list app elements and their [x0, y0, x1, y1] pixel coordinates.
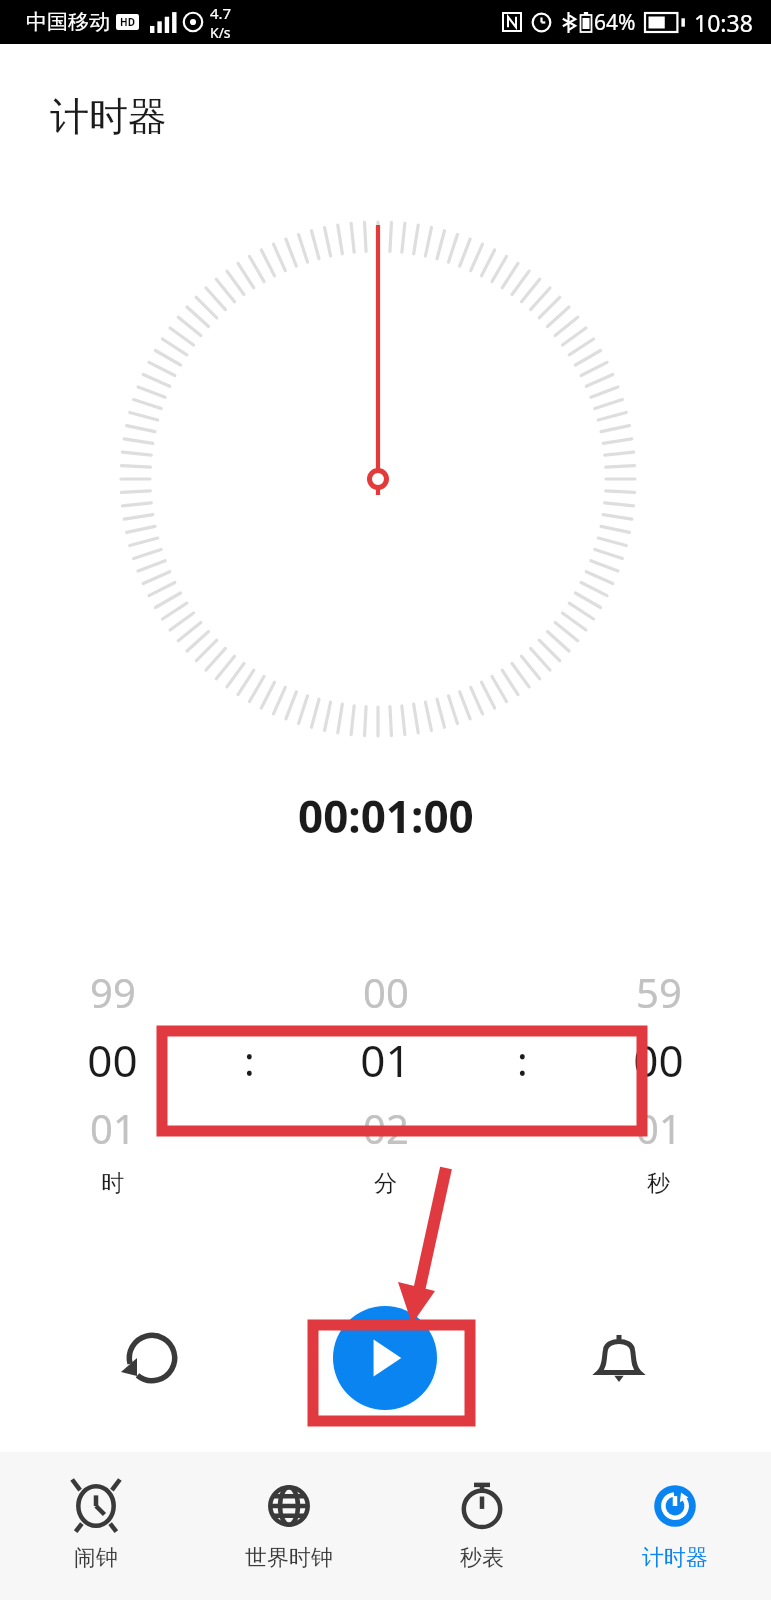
staticText: 计时器 — [642, 1544, 708, 1572]
button[interactable]: 秒 — [546, 1158, 771, 1208]
staticText: 中国移动 — [26, 9, 110, 35]
staticText: 时 — [101, 1169, 124, 1198]
staticText: K/s — [210, 23, 231, 42]
button[interactable]: Start — [333, 1306, 437, 1410]
button[interactable]: 01 — [273, 1022, 498, 1098]
button[interactable]: 世界时钟 — [192, 1452, 385, 1600]
button[interactable]: 分 — [273, 1158, 498, 1208]
button[interactable]: 秒表 — [385, 1452, 578, 1600]
staticText: 01 — [90, 1101, 136, 1155]
button[interactable]: 计时器 — [578, 1452, 771, 1600]
button[interactable]: 00 — [273, 962, 498, 1022]
button[interactable]: 时 — [0, 1158, 225, 1208]
staticText: 闹钟 — [74, 1544, 118, 1572]
button[interactable]: 闹钟 — [0, 1452, 192, 1600]
staticText: 分 — [374, 1169, 397, 1198]
staticText: : — [244, 1033, 255, 1087]
staticText: 01 — [636, 1101, 682, 1155]
staticText: 00 — [633, 1030, 684, 1090]
button[interactable]: Ringtone — [571, 1310, 667, 1406]
button[interactable]: 01 — [0, 1098, 225, 1158]
staticText: 计时器 — [50, 92, 167, 141]
staticText: 10:38 — [694, 7, 753, 38]
staticText: HD — [120, 15, 135, 29]
button[interactable]: 02 — [273, 1098, 498, 1158]
button[interactable]: 01 — [546, 1098, 771, 1158]
staticText: 99 — [90, 965, 136, 1019]
staticText: : — [517, 1033, 528, 1087]
staticText: 02 — [363, 1101, 409, 1155]
staticText: 世界时钟 — [245, 1544, 333, 1572]
staticText: 64% — [594, 8, 636, 37]
staticText: 秒 — [647, 1169, 670, 1198]
staticText: 00 — [363, 965, 409, 1019]
button[interactable]: 59 — [546, 962, 771, 1022]
button[interactable]: 00 — [0, 1022, 225, 1098]
button[interactable]: 00 — [546, 1022, 771, 1098]
button[interactable]: 计时器 — [46, 88, 171, 145]
staticText: 01 — [360, 1030, 411, 1090]
button[interactable]: 99 — [0, 962, 225, 1022]
staticText: 59 — [636, 965, 682, 1019]
staticText: 00:01:00 — [298, 786, 474, 846]
staticText: 秒表 — [460, 1544, 504, 1572]
staticText: 4.7 — [210, 3, 232, 23]
staticText: 00 — [87, 1030, 138, 1090]
button[interactable]: Reset — [104, 1310, 200, 1406]
